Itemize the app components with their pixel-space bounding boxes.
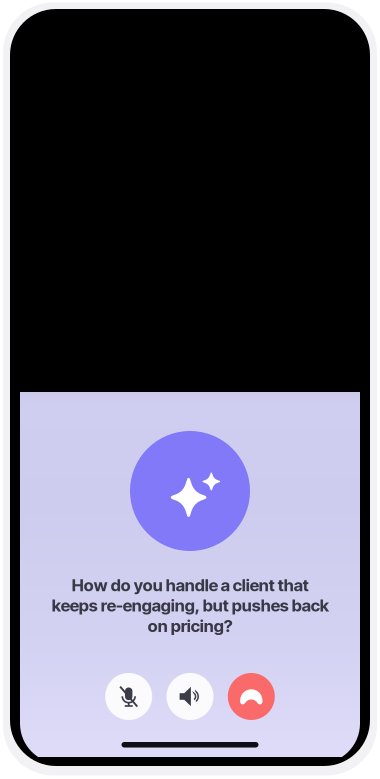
button[interactable]: End call bbox=[228, 673, 275, 720]
button[interactable]: Mute bbox=[105, 673, 152, 720]
staticText: How do you handle a client that keeps re… bbox=[51, 575, 328, 636]
button[interactable]: Speaker bbox=[166, 673, 213, 720]
